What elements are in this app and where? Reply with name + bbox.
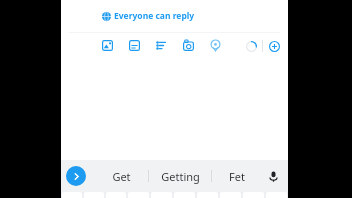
button[interactable]: Add location [206, 36, 225, 55]
button[interactable]: Voice input [262, 165, 284, 187]
staticText: Getting [161, 169, 200, 184]
staticText: Fet [229, 169, 245, 184]
staticText: Everyone can reply [114, 10, 195, 22]
button[interactable]: Add poll [152, 36, 171, 55]
button[interactable]: Expand suggestions [66, 166, 86, 186]
button[interactable]: Character count [243, 38, 259, 54]
button[interactable]: Getting [149, 160, 211, 192]
button[interactable]: Everyone can reply [61, 0, 288, 32]
button[interactable]: Open camera [179, 36, 198, 55]
staticText: Get [112, 169, 131, 184]
button[interactable]: Add photo [98, 36, 117, 55]
button[interactable]: Add GIF [125, 36, 144, 55]
button[interactable]: Add another Tweet [266, 38, 282, 54]
button[interactable]: Fet [212, 160, 262, 192]
button[interactable]: Get [94, 160, 148, 192]
